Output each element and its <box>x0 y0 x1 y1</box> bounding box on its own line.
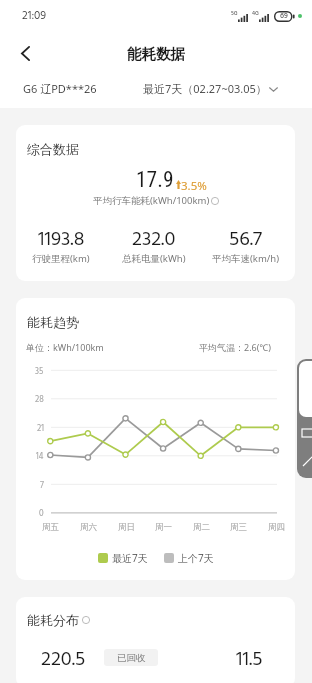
staticText: 最近7天（02.27~03.05） <box>143 81 267 96</box>
staticText: 最近7天 <box>112 551 148 565</box>
staticText: 平均行车能耗(kWh/100km) <box>93 194 210 207</box>
staticText: 0 <box>39 507 44 521</box>
staticText: 14 <box>36 450 44 464</box>
staticText: 能耗分布 <box>27 612 79 628</box>
staticText: 220.5 <box>41 644 86 676</box>
staticText: 综合数据 <box>27 141 79 157</box>
staticText: 1193.8 <box>38 224 85 256</box>
staticText: 平均车速(km/h) <box>212 252 280 265</box>
staticText: 周一 <box>155 522 172 533</box>
staticText: 周六 <box>80 522 97 533</box>
button[interactable]: 能耗趋势 <box>16 298 295 580</box>
staticText: 能耗数据 <box>127 45 185 63</box>
button[interactable]: Back <box>8 36 42 70</box>
button[interactable]: Tools <box>297 359 312 478</box>
staticText: 7 <box>40 479 44 493</box>
staticText: 3.5% <box>181 178 207 194</box>
staticText: 11.5 <box>236 644 263 676</box>
staticText: 17.9 <box>136 167 174 192</box>
staticText: 周四 <box>268 522 285 533</box>
button[interactable]: 能耗分布 <box>16 597 295 683</box>
staticText: 周二 <box>193 522 210 533</box>
staticText: 21:09 <box>22 7 47 25</box>
staticText: 4G <box>252 9 259 18</box>
staticText: 单位：kWh/100km <box>26 341 104 353</box>
staticText: 总耗电量(kWh) <box>122 252 186 265</box>
staticText: 周日 <box>118 522 135 533</box>
staticText: 232.0 <box>132 224 176 256</box>
staticText: 周五 <box>42 522 59 533</box>
staticText: 56.7 <box>229 224 263 256</box>
button[interactable]: 最近7天（02.27~03.05） <box>143 81 278 96</box>
button[interactable]: 综合数据 <box>16 125 295 281</box>
staticText: 69 <box>280 10 288 22</box>
staticText: 28 <box>35 393 44 407</box>
staticText: 平均气温：2.6(℃) <box>199 341 272 353</box>
staticText: 能耗趋势 <box>27 314 79 330</box>
staticText: 已回收 <box>117 652 146 664</box>
button[interactable]: 已回收 <box>104 649 158 666</box>
button[interactable]: G6 辽PD***26 <box>23 81 97 96</box>
staticText: 21 <box>37 422 44 436</box>
staticText: 周三 <box>230 522 247 533</box>
staticText: 5G <box>231 9 238 18</box>
staticText: 上个7天 <box>178 551 214 565</box>
staticText: 35 <box>35 365 44 379</box>
staticText: 行驶里程(km) <box>32 252 90 265</box>
